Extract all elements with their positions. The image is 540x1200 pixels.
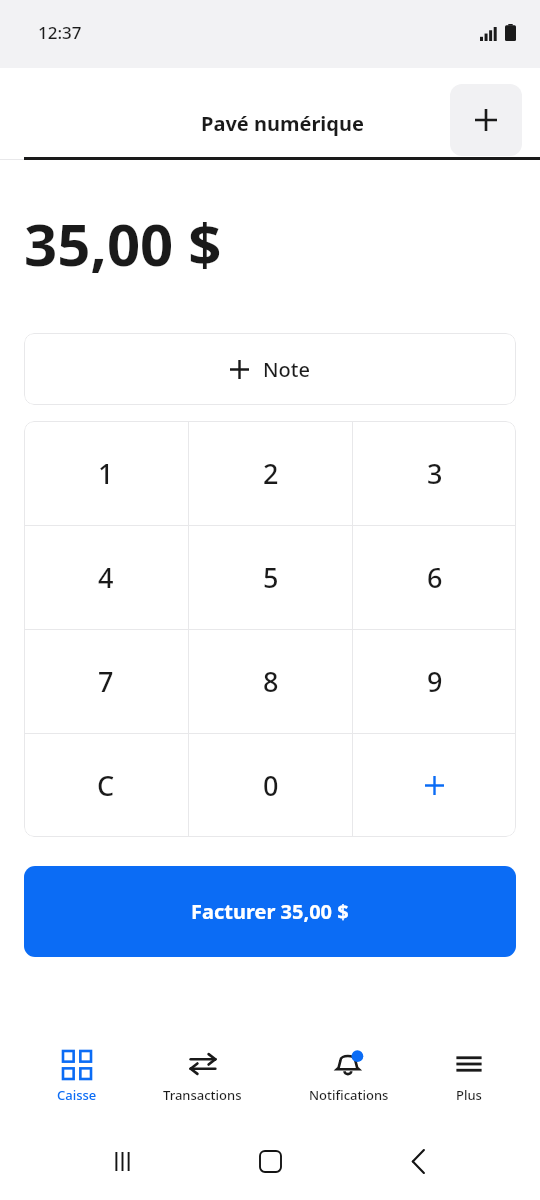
button[interactable]: 1	[24, 421, 188, 525]
button[interactable]: 6	[353, 526, 516, 629]
button[interactable]: Pavé numérique	[0, 110, 540, 160]
button[interactable]: 3	[353, 421, 516, 525]
button[interactable]: 7	[24, 630, 188, 733]
button[interactable]: Note	[24, 333, 516, 405]
staticText: C	[97, 767, 115, 804]
staticText: 4	[98, 559, 114, 596]
button[interactable]: 2	[189, 421, 352, 525]
button[interactable]: Caisse	[47, 1045, 107, 1110]
staticText: Transactions	[163, 1086, 242, 1104]
button[interactable]: 8	[189, 630, 352, 733]
button[interactable]: 9	[353, 630, 516, 733]
staticText: 2	[263, 455, 279, 492]
button[interactable]: Accueil	[244, 1135, 296, 1187]
staticText: 9	[427, 663, 443, 700]
staticText: 3	[427, 455, 443, 492]
button[interactable]: Ajouter	[450, 84, 522, 156]
button[interactable]: 4	[24, 526, 188, 629]
staticText: Notifications	[309, 1086, 389, 1104]
staticText: Caisse	[57, 1086, 97, 1104]
staticText: 1	[98, 455, 114, 492]
button[interactable]: C	[24, 734, 188, 837]
button[interactable]: Retour	[392, 1135, 444, 1187]
button[interactable]: 5	[189, 526, 352, 629]
staticText: 8	[263, 663, 279, 700]
staticText: Plus	[456, 1086, 482, 1104]
button[interactable]	[353, 734, 516, 837]
staticText: 12:37	[38, 21, 82, 44]
staticText: Note	[263, 356, 310, 383]
button[interactable]: Plus	[445, 1045, 493, 1110]
staticText: 6	[427, 559, 443, 596]
button[interactable]: 0	[189, 734, 352, 837]
button[interactable]: Récents	[96, 1135, 148, 1187]
staticText: 0	[263, 767, 279, 804]
staticText: 5	[263, 559, 279, 596]
staticText: Facturer 35,00 $	[191, 898, 349, 925]
button[interactable]: Facturer 35,00 $	[24, 866, 516, 957]
staticText: 35,00 $	[24, 204, 222, 283]
staticText: 7	[98, 663, 114, 700]
staticText: Pavé numérique	[201, 110, 364, 137]
button[interactable]: Transactions	[153, 1045, 252, 1110]
button[interactable]: Notifications	[299, 1045, 399, 1110]
